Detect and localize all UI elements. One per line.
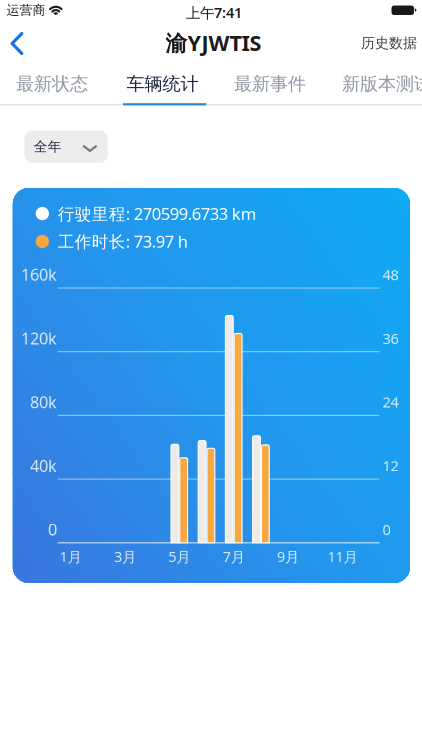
staticText: 36 xyxy=(382,328,398,348)
staticText: 最新事件 xyxy=(234,73,306,95)
staticText: 160k xyxy=(21,263,57,286)
staticText: 1月 xyxy=(59,547,81,566)
staticText: 0 xyxy=(382,519,390,539)
staticText: 新版本测试 xyxy=(342,73,422,95)
staticText: 行驶里程: 270599.6733 km xyxy=(58,202,257,225)
staticText: 7月 xyxy=(223,547,245,566)
staticText: 历史数据 xyxy=(361,34,417,52)
staticText: 3月 xyxy=(114,547,136,566)
staticText: 120k xyxy=(21,327,57,349)
staticText: 最新状态 xyxy=(16,73,88,95)
staticText: 工作时长: 73.97 h xyxy=(58,230,188,253)
staticText: 11月 xyxy=(327,547,357,566)
staticText: 9月 xyxy=(277,547,299,566)
staticText: 24 xyxy=(382,392,398,412)
button[interactable]: 最新状态 xyxy=(16,73,88,95)
staticText: 48 xyxy=(382,264,398,284)
staticText: 5月 xyxy=(168,547,190,566)
button[interactable]: 历史数据 xyxy=(361,34,417,52)
staticText: 12 xyxy=(382,456,398,476)
staticText: 渝YJWTIS xyxy=(165,28,261,57)
button[interactable]: 全年 xyxy=(24,131,108,163)
staticText: 0 xyxy=(48,518,57,540)
staticText: 车辆统计 xyxy=(126,73,198,95)
button[interactable]: 车辆统计 xyxy=(126,73,198,95)
button[interactable]: 新版本测试 xyxy=(342,73,422,95)
staticText: 全年 xyxy=(34,138,62,155)
button[interactable]: Back xyxy=(10,26,32,61)
staticText: 运营商 xyxy=(6,2,45,18)
staticText: 40k xyxy=(30,454,57,477)
staticText: 80k xyxy=(30,391,57,413)
staticText: 上午7:41 xyxy=(186,3,242,22)
button[interactable]: 最新事件 xyxy=(234,73,306,95)
